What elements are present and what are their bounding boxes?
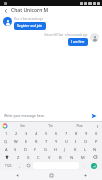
staticText: O (84, 139, 88, 144)
button[interactable]: K (70, 145, 80, 153)
button[interactable]: W (11, 137, 21, 145)
staticText: Sin (20, 124, 25, 128)
button[interactable]: Period (80, 162, 87, 169)
staticText: T (45, 139, 48, 144)
staticText: S (14, 147, 17, 152)
button[interactable]: G (40, 145, 50, 153)
staticText: Y (55, 139, 58, 144)
button[interactable]: Comma (16, 162, 23, 169)
button[interactable]: Pixe (65, 122, 94, 130)
staticText: C (37, 155, 40, 160)
button[interactable]: Tie (36, 122, 65, 130)
button[interactable]: 9 (81, 130, 91, 137)
button[interactable]: Write your message here. (4, 113, 89, 118)
button[interactable]: I (71, 137, 81, 145)
button[interactable]: L (80, 145, 90, 153)
staticText: M (81, 155, 85, 160)
button[interactable]: X (23, 153, 33, 161)
button[interactable]: Enter (88, 162, 100, 169)
button[interactable]: H (50, 145, 60, 153)
button[interactable]: Y (51, 137, 61, 145)
button[interactable]: 0 (91, 130, 101, 137)
button[interactable]: S (11, 145, 20, 153)
button[interactable]: More options (94, 123, 100, 129)
button[interactable]: 4 (31, 130, 41, 137)
staticText: F (34, 147, 37, 152)
staticText: . (83, 163, 85, 168)
button[interactable]: N (66, 153, 77, 161)
button[interactable]: 5 (41, 130, 51, 137)
staticText: 1 (5, 131, 8, 136)
button[interactable]: R (31, 137, 41, 145)
button[interactable]: Back (1, 6, 10, 15)
staticText: J (64, 147, 66, 152)
button[interactable]: Send (89, 111, 98, 120)
staticText: A (5, 147, 8, 152)
button[interactable]: Back (0, 170, 34, 180)
button[interactable]: D (20, 145, 30, 153)
button[interactable]: Backspace (88, 153, 101, 161)
staticText: You · a few seconds ago (14, 17, 43, 21)
staticText: Q (4, 139, 8, 144)
staticText: Chat Unicorn M (11, 7, 49, 14)
staticText: ?123 (5, 164, 12, 168)
button[interactable]: Sin (8, 122, 36, 130)
staticText: Tie (48, 124, 53, 128)
button[interactable]: 6 (51, 130, 61, 137)
button[interactable]: A (2, 145, 11, 153)
staticText: , (19, 163, 21, 168)
button[interactable]: Register and join (14, 22, 46, 30)
button[interactable]: F (30, 145, 40, 153)
staticText: D (24, 147, 27, 152)
button[interactable]: 1 (1, 130, 11, 137)
button[interactable]: 8 (71, 130, 81, 137)
staticText: H (54, 147, 57, 152)
button[interactable]: Z (13, 153, 23, 161)
button[interactable]: 7 (61, 130, 71, 137)
button[interactable]: Q (1, 137, 11, 145)
staticText: 6 (55, 131, 58, 136)
staticText: 4 (35, 131, 38, 136)
button[interactable]: Emoji (24, 162, 32, 169)
button[interactable]: Home (34, 170, 68, 180)
button[interactable]: J (60, 145, 70, 153)
staticText: Pixe (76, 124, 83, 128)
staticText: X (27, 155, 30, 160)
staticText: 8 (75, 131, 78, 136)
staticText: P (95, 139, 98, 144)
staticText: L (84, 147, 87, 152)
staticText: 2 (15, 131, 18, 136)
button[interactable]: 2 (11, 130, 21, 137)
staticText: E (25, 139, 28, 144)
button[interactable]: ?123 (2, 162, 15, 169)
button[interactable]: Recent apps (68, 170, 102, 180)
button[interactable]: U (61, 137, 71, 145)
button[interactable]: Google (2, 123, 8, 129)
staticText: R (35, 139, 38, 144)
button[interactable]: E (21, 137, 31, 145)
staticText: I (75, 139, 77, 144)
staticText: N (70, 155, 74, 160)
button[interactable]: C (33, 153, 44, 161)
button[interactable]: M (77, 153, 88, 161)
staticText: 7 (65, 131, 68, 136)
button[interactable]: I am fine (68, 38, 88, 46)
staticText: G (44, 147, 47, 152)
staticText: 9 (85, 131, 88, 136)
staticText: 3 (25, 131, 28, 136)
staticText: K (74, 147, 77, 152)
staticText: V (48, 155, 51, 160)
button[interactable]: B (55, 153, 66, 161)
button[interactable]: O (81, 137, 91, 145)
button[interactable]: N (90, 145, 100, 153)
button[interactable]: P (91, 137, 101, 145)
button[interactable]: T (41, 137, 51, 145)
staticText: 5 (45, 131, 48, 136)
staticText: Unicorn M Chat · a few seconds ago (44, 33, 88, 37)
button[interactable]: Shift (1, 153, 13, 161)
staticText: Register and join (17, 24, 43, 28)
button[interactable]: 3 (21, 130, 31, 137)
button[interactable]: V (44, 153, 55, 161)
staticText: 0 (95, 131, 98, 136)
